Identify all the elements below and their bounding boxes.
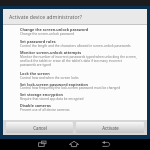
staticText: Set storage encryption xyxy=(20,92,142,97)
staticText: Set lock-screen password expiration xyxy=(20,82,142,87)
button[interactable]: Cancel xyxy=(6,122,73,133)
staticText: Activate device administrator? xyxy=(9,13,83,20)
staticText: Monitor screen-unlock attempts xyxy=(20,50,142,55)
staticText: Set password rules xyxy=(20,39,142,44)
staticText: Cancel xyxy=(33,125,47,131)
staticText: passwords are typed xyxy=(20,63,142,67)
staticText: Require that stored app data be encrypte… xyxy=(20,97,142,101)
button[interactable]: Home xyxy=(68,138,80,150)
staticText: and lock the tablet or erase all the tab… xyxy=(20,59,142,63)
staticText: Change the screen-unlock password xyxy=(20,32,142,36)
button[interactable]: Back xyxy=(100,138,112,150)
button[interactable]: Activate xyxy=(76,122,144,133)
staticText: Disable cameras xyxy=(20,103,142,108)
staticText: Control how and when the screen locks xyxy=(20,76,142,80)
staticText: Monitor the number of incorrect password… xyxy=(20,55,142,59)
staticText: Lock the screen xyxy=(20,71,142,76)
staticText: Change the screen-unlock password xyxy=(20,27,142,32)
staticText: Control how frequently the lock-screen p… xyxy=(20,86,142,90)
staticText: Prevent use of all device cameras xyxy=(20,108,142,112)
staticText: Activate xyxy=(102,125,119,131)
button[interactable]: Recents xyxy=(37,138,49,150)
staticText: Control the length and the characters al… xyxy=(20,44,142,48)
